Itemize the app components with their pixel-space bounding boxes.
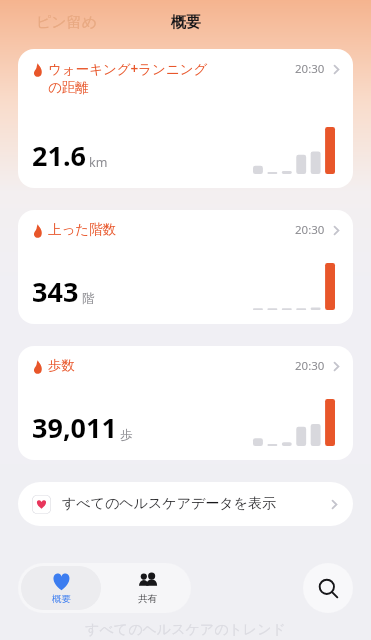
button[interactable]: 歩数 [18,346,353,460]
button[interactable]: 上った階数 [18,210,353,324]
staticText: km [89,154,108,171]
staticText: 歩数 [48,357,75,374]
staticText: 共有 [138,593,157,605]
button[interactable]: すべてのヘルスケアデータを表示 [18,482,353,526]
staticText: 階 [82,291,95,307]
staticText: ウォーキング+ランニング の距離 [48,60,208,96]
staticText: すべてのヘルスケアのトレンド [85,621,286,639]
button[interactable]: 概要 [21,566,101,610]
staticText: 概要 [171,13,201,32]
staticText: 20:30 [295,222,325,238]
staticText: 概要 [52,593,71,605]
button[interactable]: ウォーキング+ランニング の距離 [18,49,353,188]
staticText: 20:30 [295,358,325,374]
staticText: ピン留め [36,13,98,32]
staticText: 343 [32,273,79,310]
staticText: 39,011 [32,409,117,446]
button[interactable]: 共有 [104,563,191,613]
staticText: 21.6 [32,137,86,174]
staticText: 歩 [120,427,133,443]
button[interactable]: 検索 [303,563,353,613]
staticText: 20:30 [295,61,325,77]
staticText: すべてのヘルスケアデータを表示 [62,495,276,513]
staticText: 上った階数 [48,221,117,238]
